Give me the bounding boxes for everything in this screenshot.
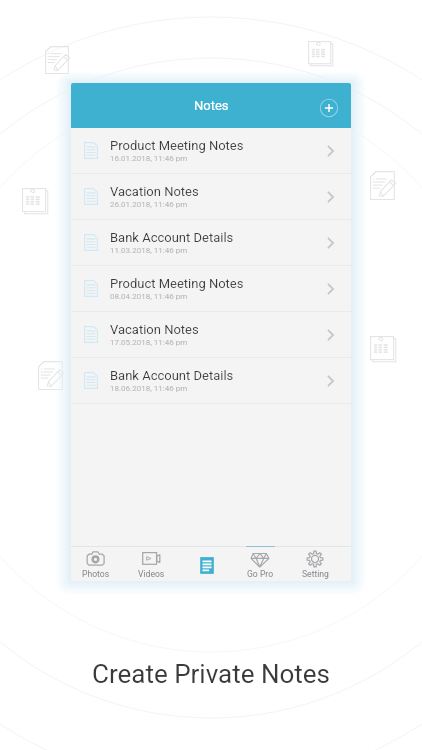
staticText: Product Meeting Notes [110, 138, 244, 153]
staticText: 08.04.2018, 11:46 pm [110, 292, 188, 301]
button[interactable]: Product Meeting Notes [71, 128, 351, 174]
staticText: Notes [194, 98, 229, 113]
button[interactable]: Vacation Notes [71, 312, 351, 358]
staticText: Create Private Notes [0, 659, 422, 689]
button[interactable]: Product Meeting Notes [71, 266, 351, 312]
button[interactable]: Bank Account Details [71, 220, 351, 266]
staticText: 16.01.2018, 11:46 pm [110, 154, 188, 163]
staticText: 11.03.2018, 11:46 pm [110, 246, 188, 255]
staticText: Photos [82, 569, 110, 579]
button[interactable]: Photos [71, 546, 122, 581]
staticText: Bank Account Details [110, 230, 234, 245]
button[interactable]: Setting [289, 546, 341, 581]
staticText: Vacation Notes [110, 322, 199, 337]
staticText: Vacation Notes [110, 184, 199, 199]
button[interactable]: Notes [181, 546, 233, 581]
staticText: Setting [302, 569, 329, 579]
staticText: Product Meeting Notes [110, 276, 244, 291]
button[interactable]: Go Pro [234, 546, 286, 581]
staticText: Go Pro [247, 569, 274, 579]
button[interactable]: Add note [318, 97, 340, 119]
staticText: Videos [138, 569, 165, 579]
staticText: 18.06.2018, 11:46 pm [110, 384, 188, 393]
button[interactable]: Vacation Notes [71, 174, 351, 220]
button[interactable]: Videos [125, 546, 177, 581]
staticText: 17.05.2018, 11:46 pm [110, 338, 188, 347]
staticText: Bank Account Details [110, 368, 234, 383]
staticText: 26.01.2018, 11:46 pm [110, 200, 188, 209]
button[interactable]: Bank Account Details [71, 358, 351, 404]
